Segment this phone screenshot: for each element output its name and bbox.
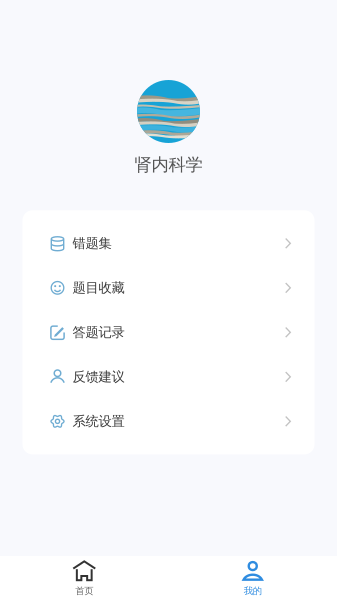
- button[interactable]: 首页: [0, 554, 168, 600]
- staticText: 错题集: [72, 235, 111, 252]
- button[interactable]: 我的: [168, 554, 337, 600]
- staticText: 答题记录: [72, 324, 124, 341]
- staticText: 我的: [244, 585, 262, 597]
- staticText: 反馈建议: [72, 369, 124, 385]
- button[interactable]: 答题记录: [22, 310, 314, 355]
- staticText: 肾内科学: [134, 154, 202, 175]
- button[interactable]: 题目收藏: [22, 266, 314, 310]
- button[interactable]: 错题集: [22, 221, 314, 266]
- button[interactable]: 反馈建议: [22, 355, 314, 399]
- button[interactable]: 系统设置: [22, 399, 314, 444]
- staticText: 题目收藏: [72, 280, 124, 296]
- staticText: 系统设置: [72, 413, 124, 430]
- staticText: 首页: [75, 585, 93, 597]
